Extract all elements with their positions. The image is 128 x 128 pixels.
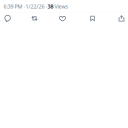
button[interactable]: Repost [28, 13, 41, 23]
staticText: Views [53, 3, 68, 10]
button[interactable]: Reply [1, 13, 14, 23]
staticText: 6:39 PM · 1/22/26 · [3, 3, 47, 10]
button[interactable]: Share [115, 13, 128, 23]
staticText: 38 [47, 3, 53, 10]
button[interactable]: Like [56, 13, 69, 23]
button[interactable]: Bookmark [86, 13, 99, 23]
